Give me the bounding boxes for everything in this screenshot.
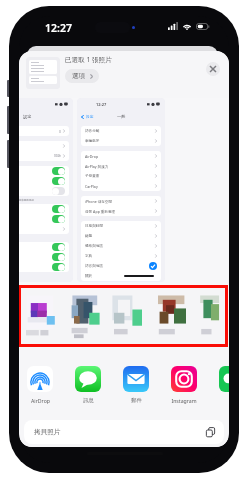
button[interactable] [66,289,106,343]
button[interactable]: Instagram [171,366,197,404]
staticText: 已選取 1 張照片 [65,55,112,64]
staticText: 車輛藍牙 [85,139,100,144]
staticText: 日期與時間 [85,224,103,229]
staticText: 背景 App 重新整理 [85,209,116,214]
button[interactable] [110,289,150,343]
staticText: 12:27 [96,102,107,107]
staticText: 一般 [117,114,126,119]
staticText: AirDrop [85,154,99,159]
staticText: iPhone 儲存空間 [85,199,113,204]
button[interactable]: 訊息 [75,366,101,404]
staticText: AirPlay 與接力 [85,164,109,169]
staticText: 鍵盤 [85,234,93,239]
staticText: 12:27 [45,21,72,35]
staticText: 語音分離 [85,129,100,134]
staticText: 設定 [86,114,94,119]
staticText: 關於 [85,274,93,279]
button[interactable] [154,289,194,343]
staticText: 郵件 [131,397,142,404]
staticText: 設定 [23,114,32,119]
button[interactable]: 拷貝照片 [24,420,224,444]
staticText: 語言與地區 [85,264,103,269]
button[interactable]: AirDrop [27,366,53,404]
staticText: 選項 [72,72,86,80]
staticText: Instagram [171,397,197,404]
staticText: 字典 [85,254,93,259]
staticText: 子母畫面 [85,174,100,179]
staticText: 關於「項目」所引發的功能和服務條款 [19,198,35,201]
button[interactable]: Close [206,62,220,76]
button[interactable] [198,289,225,343]
staticText: 拷貝照片 [34,428,61,436]
staticText: AirDrop [31,397,50,404]
button[interactable]: 郵件 [123,366,149,404]
staticText: CarPlay [85,184,98,189]
button[interactable] [22,289,62,343]
staticText: 開啟 [54,154,61,158]
button[interactable]: 選項 [65,69,99,83]
staticText: 訊息 [83,397,94,404]
staticText: 優格與地區 [85,244,103,249]
button[interactable] [219,366,229,397]
staticText: 0 [59,129,61,134]
